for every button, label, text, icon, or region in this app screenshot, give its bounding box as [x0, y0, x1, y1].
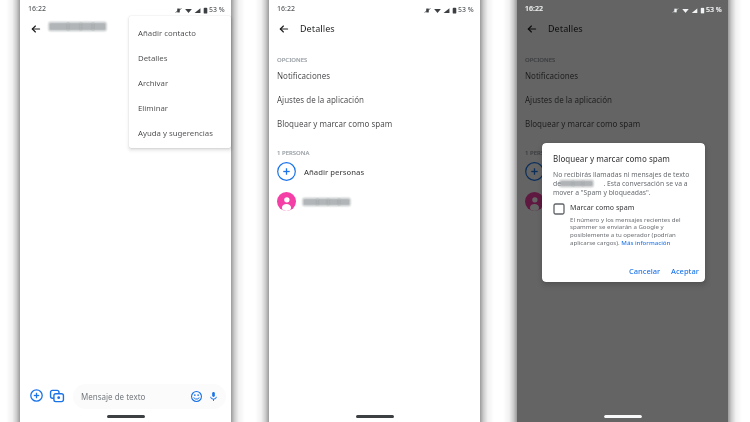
button[interactable]: Back [522, 19, 541, 38]
button[interactable]: Bloquear y marcar como spam [517, 111, 728, 135]
staticText: Ajustes de la aplicación [525, 94, 612, 105]
staticText: 53 % [209, 5, 225, 15]
button[interactable]: Mensaje de texto [73, 384, 226, 409]
staticText: Notificaciones [277, 70, 331, 81]
button[interactable]: Back [26, 19, 45, 38]
staticText: 16:22 [28, 4, 46, 14]
staticText: OPCIONES [525, 56, 556, 64]
staticText: Añadir contacto [138, 28, 196, 39]
button[interactable]: Añadir personas [517, 158, 728, 185]
staticText: Aceptar [671, 266, 699, 276]
button[interactable]: Notificaciones [269, 63, 480, 87]
button[interactable]: Notificaciones [517, 63, 728, 87]
staticText: Ajustes de la aplicación [277, 94, 364, 105]
button[interactable]: Add attachment [28, 387, 45, 404]
button[interactable]: Ayuda y sugerencias [129, 121, 231, 146]
button[interactable]: Marcar como spam [553, 203, 565, 215]
staticText: Mensaje de texto [81, 391, 146, 402]
staticText: Marcar como spam [570, 203, 635, 213]
staticText: Eliminar [138, 103, 169, 114]
other: Back [31, 24, 41, 34]
staticText: OPCIONES [277, 56, 308, 64]
staticText: Bloquear y marcar como spam [277, 118, 393, 129]
staticText: Detalles [138, 53, 168, 64]
button[interactable]: Añadir personas [269, 158, 480, 185]
staticText: Detalles [548, 22, 583, 34]
staticText: El número y los mensajes recientes del s… [570, 215, 690, 247]
staticText: 1 PERSONA [277, 149, 310, 157]
button[interactable]: Añadir contacto [129, 21, 231, 46]
staticText: 16:22 [525, 4, 543, 14]
staticText: Detalles [300, 22, 335, 34]
button[interactable] [517, 188, 728, 215]
staticText: Bloquear y marcar como spam [525, 118, 641, 129]
staticText: 53 % [706, 5, 722, 15]
button[interactable]: Eliminar [129, 96, 231, 121]
button[interactable]: Detalles [129, 46, 231, 71]
button[interactable]: Archivar [129, 71, 231, 96]
staticText: Añadir personas [304, 167, 365, 177]
button[interactable]: Back [274, 19, 293, 38]
button[interactable]: Cancelar [624, 263, 666, 279]
staticText: Bloquear y marcar como spam [553, 153, 670, 164]
button[interactable] [269, 188, 480, 215]
other: Emoji [191, 391, 202, 402]
button[interactable]: Ajustes de la aplicación [517, 87, 728, 111]
other: Back [279, 24, 289, 34]
button[interactable]: Aceptar [666, 263, 704, 279]
staticText: Ayuda y sugerencias [138, 128, 213, 139]
staticText: 16:22 [277, 4, 295, 14]
staticText: 53 % [458, 5, 474, 15]
staticText: Añadir personas [552, 167, 613, 177]
other: Voice message [208, 391, 219, 402]
staticText: 1 PERSONA [525, 149, 558, 157]
staticText: Archivar [138, 78, 169, 89]
button[interactable]: Bloquear y marcar como spam [269, 111, 480, 135]
button[interactable]: Camera [48, 387, 65, 404]
staticText: 53 % [706, 5, 722, 15]
staticText: 16:22 [525, 4, 543, 14]
staticText: Cancelar [629, 266, 661, 276]
button[interactable]: Ajustes de la aplicación [269, 87, 480, 111]
staticText: No recibirás llamadas ni mensajes de tex… [553, 170, 693, 197]
other: Back [527, 24, 537, 34]
staticText: Notificaciones [525, 70, 579, 81]
